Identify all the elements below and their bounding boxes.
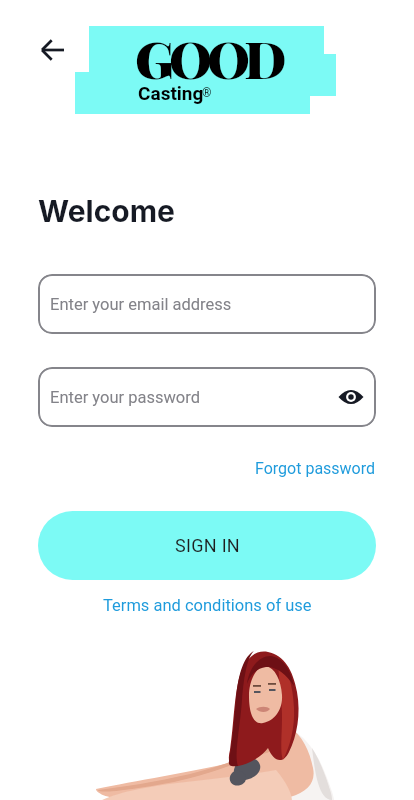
- staticText: Forgot password: [255, 459, 376, 478]
- staticText: Enter your password: [50, 388, 201, 407]
- staticText: Terms and conditions of use: [103, 596, 312, 615]
- staticText: Welcome: [38, 193, 175, 229]
- button[interactable]: Back: [33, 30, 73, 70]
- button[interactable]: Enter your password: [38, 367, 376, 427]
- staticText: ®: [202, 86, 212, 100]
- staticText: GOOD: [135, 23, 282, 92]
- button[interactable]: Enter your email address: [38, 274, 376, 334]
- staticText: SIGN IN: [175, 535, 240, 556]
- staticText: Casting: [138, 82, 204, 104]
- button[interactable]: Terms and conditions of use: [101, 594, 314, 617]
- button[interactable]: Forgot password: [254, 456, 377, 481]
- button[interactable]: SIGN IN: [38, 511, 376, 580]
- staticText: Enter your email address: [50, 295, 232, 314]
- button[interactable]: Show password: [334, 380, 368, 414]
